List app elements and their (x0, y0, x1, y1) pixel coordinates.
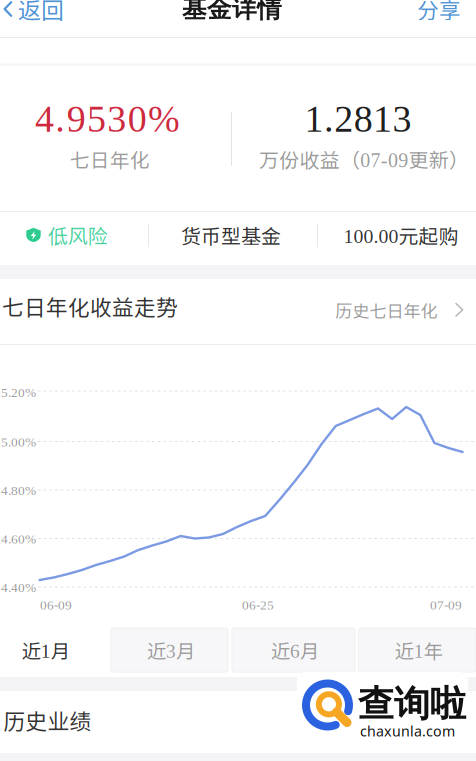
staticText: 近6月 (271, 636, 319, 664)
staticText: 06-25 (242, 598, 274, 612)
staticText: 货币型基金 (181, 221, 281, 249)
staticText: 100.00元起购 (343, 221, 458, 249)
button[interactable]: 返回 (0, 0, 83, 20)
staticText: 历史业绩 (3, 704, 91, 736)
staticText: 1.2813 (304, 98, 411, 140)
button[interactable]: 近1年 (359, 628, 476, 672)
staticText: 4.40% (1, 580, 36, 595)
staticText: 万份收益（07-09更新） (259, 144, 469, 173)
staticText: 七日年化 (70, 145, 150, 173)
staticText: 近1年 (395, 636, 443, 664)
staticText: 5.20% (1, 385, 36, 400)
staticText: 4.60% (1, 532, 36, 546)
staticText: 4.9530% (35, 98, 180, 140)
staticText: 近3月 (147, 636, 195, 664)
button[interactable]: 近6月 (232, 628, 355, 672)
staticText: 分享 (417, 0, 461, 24)
staticText: 近1月 (22, 636, 70, 664)
staticText: 查询啦 (358, 681, 466, 727)
button[interactable]: 近1月 (0, 624, 106, 676)
staticText: chaxunla.com (360, 721, 455, 741)
button[interactable]: 分享 (385, 0, 474, 20)
button[interactable]: 历史七日年化 (333, 298, 465, 322)
staticText: 4.80% (1, 483, 36, 498)
staticText: 5.00% (1, 435, 36, 449)
staticText: 返回 (18, 0, 64, 26)
staticText: 七日年化收益走势 (2, 290, 178, 322)
staticText: 低风险 (48, 220, 108, 249)
staticText: 历史七日年化 (335, 298, 437, 322)
button[interactable]: 近3月 (111, 628, 228, 672)
staticText: 07-09 (430, 598, 462, 612)
staticText: 基金详情 (182, 0, 282, 24)
staticText: 06-09 (40, 598, 72, 612)
